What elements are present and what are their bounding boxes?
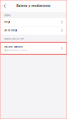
staticText: Energía [4,21,10,23]
staticText: RENDIMIENTO DE APPS [4,38,24,40]
staticText: Seleccionar aplicaciones [4,46,23,48]
button[interactable]: Back [0,0,9,12]
staticText: Batería y rendimiento [16,4,50,8]
staticText: GENERAL [4,14,11,17]
button[interactable]: Uso de energía [0,26,67,34]
staticText: Uso de energía [4,29,17,32]
button[interactable]: Seleccionar aplicaciones [0,42,67,54]
staticText: Elige las apps de mayor consumo [4,49,27,51]
button[interactable]: Energía [0,18,67,26]
